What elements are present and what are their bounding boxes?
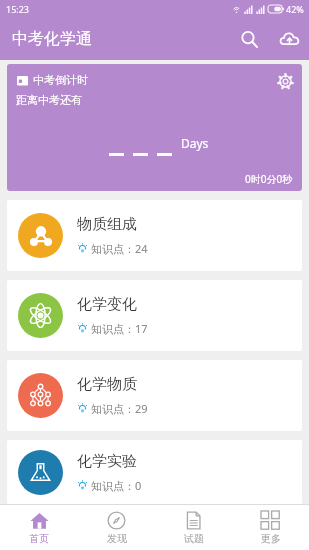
- button[interactable]: 化学实验: [7, 440, 302, 504]
- staticText: 距离中考还有: [16, 93, 82, 107]
- button[interactable]: 试题: [155, 505, 232, 550]
- button[interactable]: 化学物质: [7, 360, 302, 431]
- staticText: 知识点：24: [91, 241, 148, 256]
- staticText: 试题: [184, 532, 204, 545]
- button[interactable]: 中考倒计时: [7, 64, 302, 191]
- button[interactable]: 首页: [0, 505, 78, 550]
- button[interactable]: Settings: [272, 68, 298, 94]
- staticText: 中考倒计时: [33, 73, 88, 87]
- staticText: 15:23: [6, 3, 30, 15]
- button[interactable]: Cloud sync: [269, 19, 309, 59]
- staticText: 知识点：17: [91, 321, 148, 336]
- staticText: 知识点：0: [91, 478, 142, 493]
- staticText: 发现: [107, 532, 127, 545]
- staticText: 物质组成: [77, 215, 137, 234]
- button[interactable]: 更多: [232, 505, 309, 550]
- button[interactable]: Search: [229, 19, 269, 59]
- staticText: 化学变化: [77, 295, 137, 314]
- staticText: 知识点：29: [91, 401, 148, 416]
- staticText: 42%: [286, 3, 304, 15]
- staticText: 中考化学通: [12, 29, 229, 49]
- staticText: 0时0分0秒: [245, 172, 293, 186]
- staticText: 首页: [29, 532, 49, 545]
- button[interactable]: 发现: [78, 505, 155, 550]
- staticText: Days: [181, 135, 209, 151]
- staticText: 化学实验: [77, 452, 137, 471]
- staticText: 更多: [261, 532, 281, 545]
- staticText: 化学物质: [77, 375, 137, 394]
- button[interactable]: 化学变化: [7, 280, 302, 351]
- button[interactable]: 物质组成: [7, 200, 302, 271]
